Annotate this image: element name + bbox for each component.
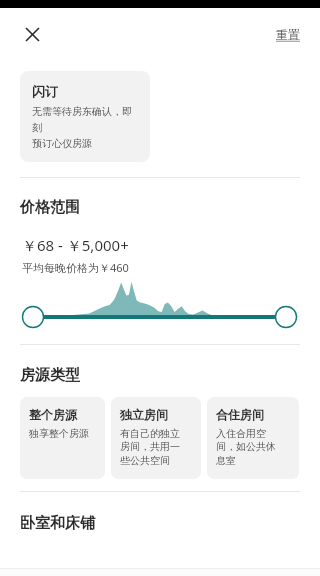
button[interactable]: Price range slider	[0, 283, 320, 331]
staticText: 重置	[276, 27, 300, 42]
staticText: 独享整个房源	[29, 427, 89, 440]
staticText: ￥68 - ￥5,000+	[22, 235, 129, 255]
button[interactable]: 闪订	[20, 71, 150, 162]
staticText: 卧室和床铺	[20, 514, 95, 533]
staticText: 入住合用空 间，如公共休 息室	[216, 427, 276, 467]
button[interactable]: 重置	[272, 21, 304, 48]
button[interactable]: 整个房源	[20, 397, 105, 479]
staticText: 无需等待房东确认，即刻 预订心仪房源	[32, 105, 138, 150]
staticText: 有自己的独立 房间，共用一 些公共空间	[120, 427, 180, 467]
button[interactable]: 合住房间	[207, 397, 299, 479]
button[interactable]: 独立房间	[111, 397, 201, 479]
staticText: 闪订	[32, 83, 58, 99]
staticText: 房源类型	[20, 366, 80, 385]
staticText: 独立房间	[120, 407, 168, 422]
staticText: 平均每晚价格为￥460	[22, 260, 129, 275]
staticText: 整个房源	[29, 407, 77, 422]
button[interactable]: Close	[14, 16, 50, 52]
staticText: 价格范围	[20, 198, 80, 217]
staticText: 合住房间	[216, 407, 264, 422]
